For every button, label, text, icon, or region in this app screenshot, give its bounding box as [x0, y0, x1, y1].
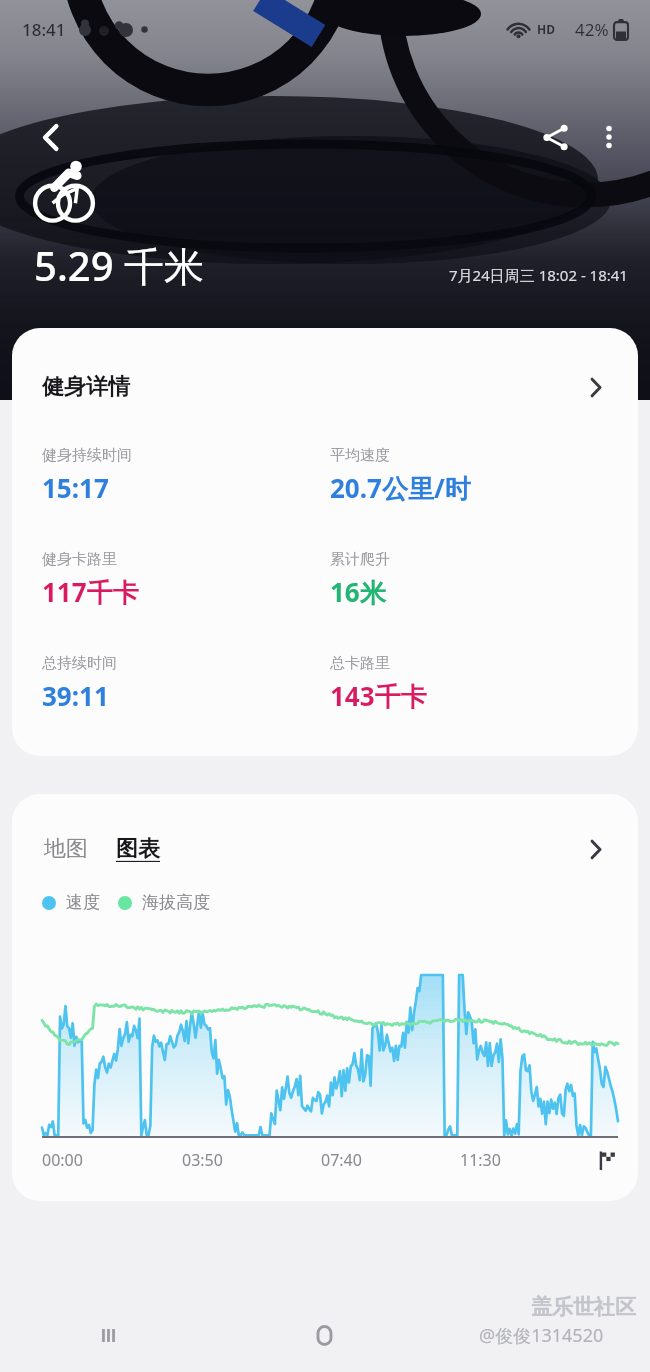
staticText: 总卡路里: [330, 654, 390, 673]
staticText: 143千卡: [330, 678, 427, 714]
button[interactable]: Back: [24, 110, 78, 164]
staticText: 5.29 千米: [34, 238, 204, 293]
staticText: 图表: [116, 835, 160, 863]
staticText: 7月24日周三 18:02 - 18:41: [449, 265, 628, 285]
staticText: 累计爬升: [330, 550, 390, 569]
button[interactable]: Open fitness details: [572, 364, 618, 410]
staticText: 海拔高度: [142, 892, 210, 913]
staticText: 16米: [330, 574, 386, 610]
staticText: 速度: [66, 892, 100, 913]
button[interactable]: Back: [433, 1298, 650, 1372]
staticText: 07:40: [321, 1149, 362, 1171]
staticText: 00:00: [42, 1149, 83, 1171]
staticText: 健身卡路里: [42, 550, 117, 569]
staticText: @俊俊1314520: [479, 1323, 604, 1348]
staticText: 18:41: [22, 18, 66, 41]
staticText: HD: [537, 21, 555, 37]
staticText: 117千卡: [42, 574, 139, 610]
button[interactable]: Recent apps: [0, 1298, 216, 1372]
button[interactable]: 地图: [42, 833, 90, 865]
button[interactable]: 健身详情: [12, 328, 638, 756]
button[interactable]: More options: [582, 110, 636, 164]
staticText: 健身持续时间: [42, 446, 132, 465]
staticText: 健身详情: [42, 373, 130, 401]
staticText: 03:50: [182, 1149, 223, 1171]
staticText: 20.7公里/时: [330, 470, 471, 506]
staticText: 盖乐世社区: [531, 1294, 636, 1320]
staticText: 39:11: [42, 678, 109, 713]
button[interactable]: Share: [528, 110, 582, 164]
staticText: 总持续时间: [42, 654, 117, 673]
staticText: 地图: [44, 835, 88, 863]
staticText: 11:30: [460, 1149, 501, 1171]
button[interactable]: Home: [216, 1298, 433, 1372]
staticText: 15:17: [42, 470, 109, 505]
button[interactable]: Open chart: [572, 826, 618, 872]
button[interactable]: 图表: [114, 833, 162, 865]
staticText: 平均速度: [330, 446, 390, 465]
staticText: 42%: [575, 18, 609, 41]
